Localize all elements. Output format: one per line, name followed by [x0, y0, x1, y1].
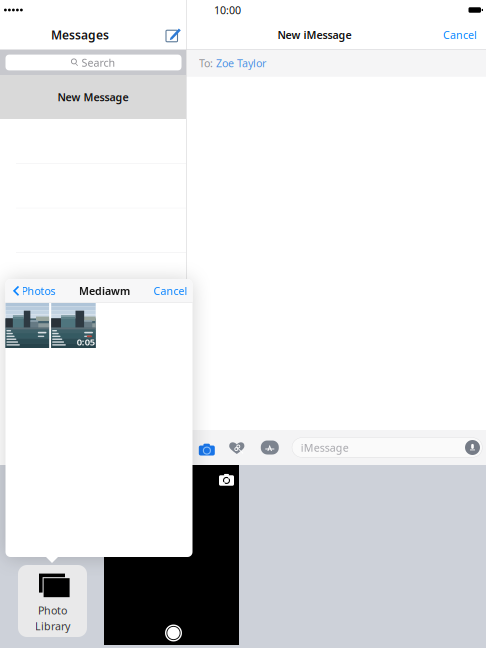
staticText: Photos — [21, 284, 55, 298]
staticText: iMessage — [301, 440, 349, 455]
button[interactable]: Photo — [5, 303, 49, 348]
button[interactable]: Dictate — [465, 440, 480, 455]
staticText: New iMessage — [277, 28, 351, 42]
staticText: Search — [82, 55, 116, 70]
button[interactable]: Switch camera — [219, 473, 234, 485]
staticText: Messages — [51, 27, 109, 43]
button[interactable]: Camera — [196, 436, 218, 458]
staticText: Library — [35, 619, 70, 633]
staticText: New Message — [57, 90, 128, 104]
button[interactable]: Compose — [160, 21, 186, 49]
staticText: Zoe Taylor — [216, 56, 266, 70]
staticText: 10:00 — [214, 3, 241, 17]
staticText: To: — [199, 56, 216, 70]
staticText: Mediawm — [79, 284, 130, 298]
staticText: Cancel — [153, 284, 187, 298]
staticText: Photo — [38, 603, 67, 618]
button[interactable]: Cancel — [153, 284, 192, 298]
button[interactable]: App Store — [259, 436, 281, 458]
button[interactable]: Take photo — [165, 624, 182, 641]
button[interactable]: Photos — [12, 284, 55, 298]
button[interactable]: Cancel — [443, 28, 486, 42]
button[interactable]: Photo — [18, 565, 87, 637]
staticText: Cancel — [443, 28, 477, 42]
button[interactable]: Video, 5 seconds — [51, 303, 96, 348]
button[interactable]: Digital Touch — [226, 436, 248, 458]
staticText: 0:05 — [77, 336, 95, 348]
